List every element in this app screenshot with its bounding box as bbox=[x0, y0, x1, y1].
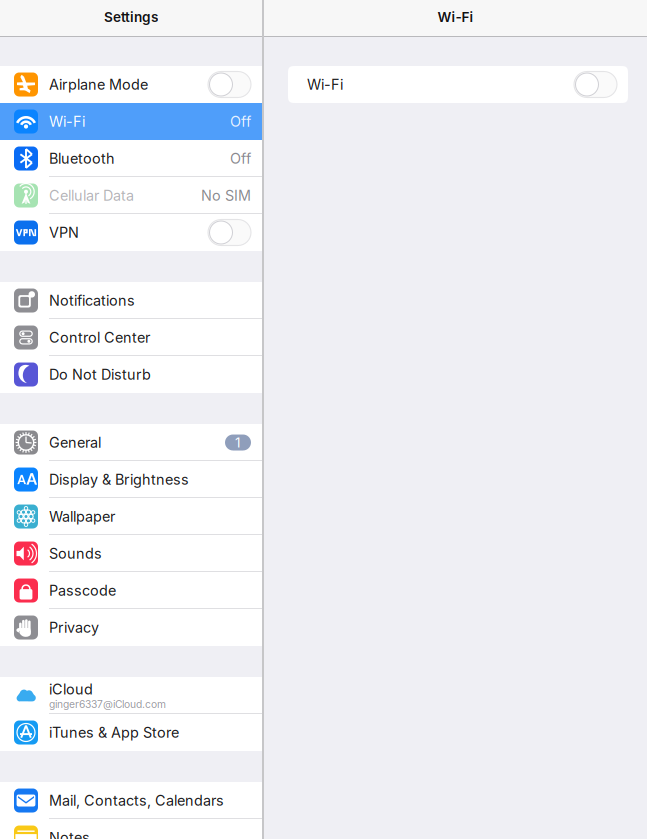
staticText: Cellular Data bbox=[49, 187, 134, 204]
button[interactable]: Do Not Disturb bbox=[0, 356, 262, 393]
staticText: Notes bbox=[49, 829, 90, 839]
staticText: Bluetooth bbox=[49, 150, 115, 167]
button[interactable]: Privacy bbox=[0, 609, 262, 646]
staticText: Do Not Disturb bbox=[49, 366, 151, 383]
button[interactable]: Bluetooth bbox=[0, 140, 262, 177]
staticText: Control Center bbox=[49, 329, 150, 346]
button[interactable]: Passcode bbox=[0, 572, 262, 609]
button[interactable]: iCloud bbox=[0, 677, 262, 714]
button[interactable]: iTunes & App Store bbox=[0, 714, 262, 751]
staticText: Wi-Fi bbox=[307, 76, 343, 93]
button[interactable]: Wi-Fi bbox=[288, 66, 628, 103]
staticText: VPN bbox=[49, 224, 79, 241]
staticText: Settings bbox=[104, 9, 158, 25]
staticText: Wi-Fi bbox=[49, 113, 85, 130]
staticText: No SIM bbox=[201, 187, 251, 204]
staticText: iCloud bbox=[49, 681, 93, 698]
staticText: Off bbox=[230, 150, 251, 167]
staticText: Airplane Mode bbox=[49, 76, 148, 93]
staticText: Sounds bbox=[49, 545, 102, 562]
button[interactable]: Wallpaper bbox=[0, 498, 262, 535]
button[interactable]: Mail, Contacts, Calendars bbox=[0, 782, 262, 819]
button[interactable]: Airplane Mode bbox=[0, 66, 262, 103]
staticText: Wallpaper bbox=[49, 508, 115, 525]
button[interactable]: General bbox=[0, 424, 262, 461]
button[interactable]: Cellular Data bbox=[0, 177, 262, 214]
button[interactable]: Control Center bbox=[0, 319, 262, 356]
button[interactable]: VPN bbox=[0, 214, 262, 251]
staticText: Wi-Fi bbox=[437, 9, 473, 25]
staticText: ginger6337@iCloud.com bbox=[49, 698, 166, 710]
button[interactable]: Display & Brightness bbox=[0, 461, 262, 498]
staticText: General bbox=[49, 434, 101, 451]
button[interactable]: Wi-Fi bbox=[0, 103, 262, 140]
staticText: Display & Brightness bbox=[49, 471, 189, 488]
staticText: Off bbox=[230, 113, 251, 130]
button[interactable]: Sounds bbox=[0, 535, 262, 572]
staticText: Mail, Contacts, Calendars bbox=[49, 792, 224, 809]
button[interactable]: Notifications bbox=[0, 282, 262, 319]
staticText: Privacy bbox=[49, 619, 99, 636]
button[interactable]: Notes bbox=[0, 819, 262, 839]
staticText: Passcode bbox=[49, 582, 116, 599]
staticText: 1 bbox=[235, 434, 241, 451]
staticText: Notifications bbox=[49, 292, 135, 309]
staticText: iTunes & App Store bbox=[49, 724, 179, 741]
